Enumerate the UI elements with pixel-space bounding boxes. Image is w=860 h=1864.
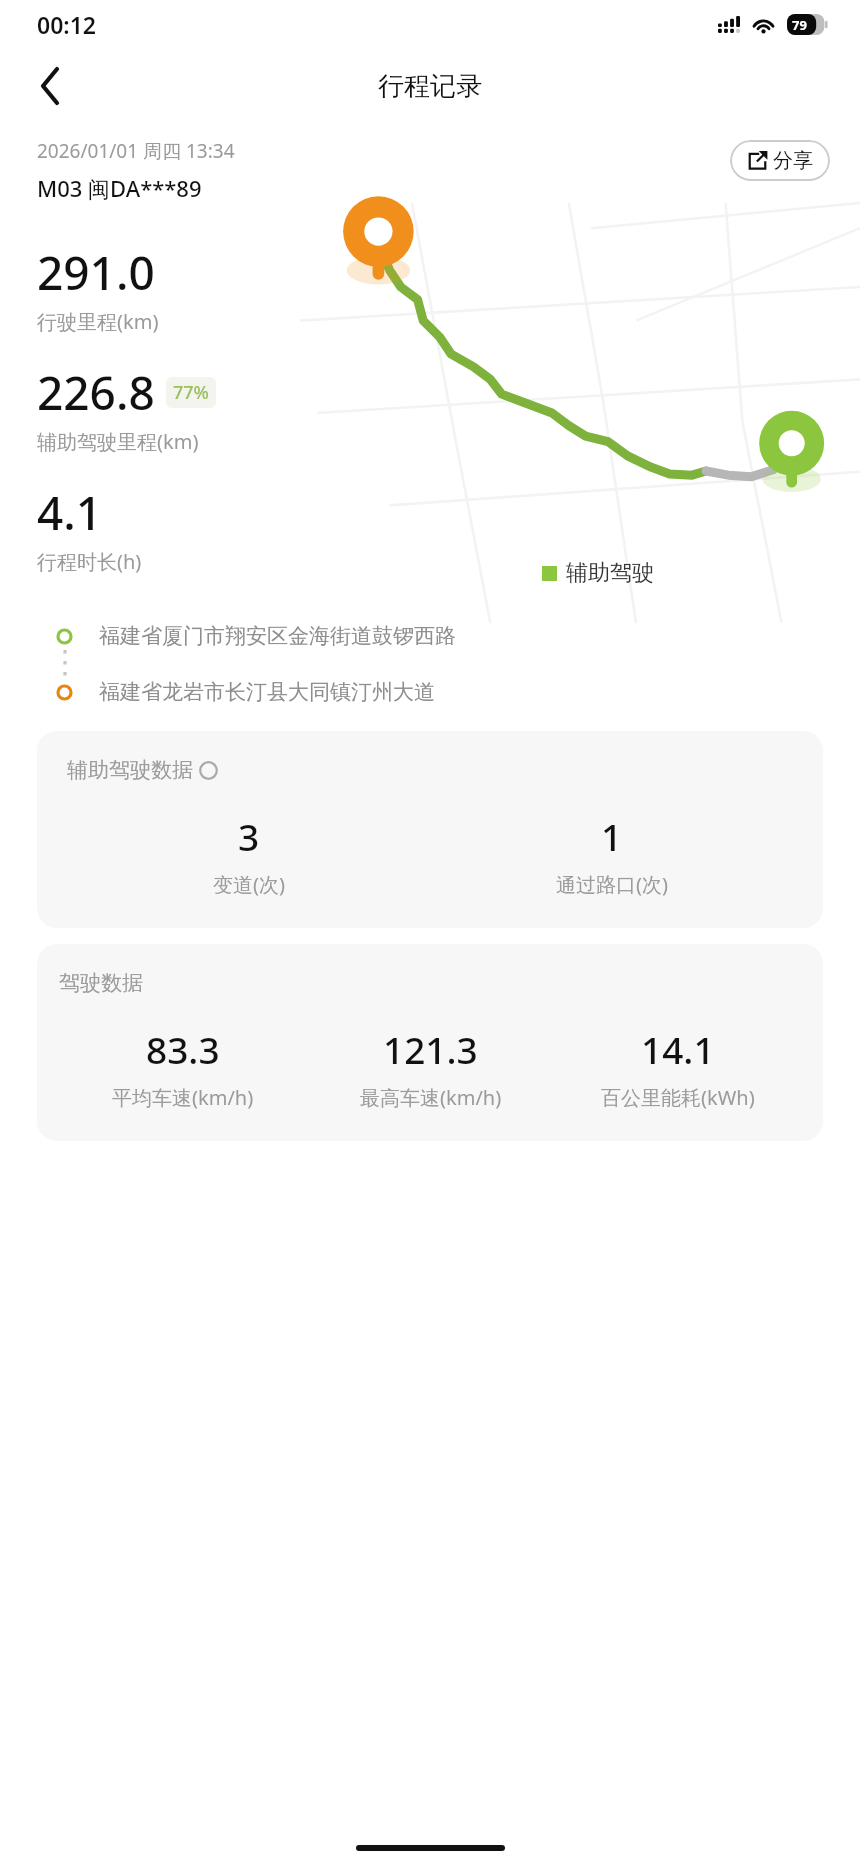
staticText: 00:12 bbox=[37, 9, 96, 40]
staticText: 辅助驾驶 bbox=[566, 559, 654, 587]
staticText: 平均车速(km/h) bbox=[112, 1084, 254, 1111]
staticText: 变道(次) bbox=[213, 871, 285, 898]
button[interactable]: 分享 bbox=[730, 140, 830, 181]
staticText: M03 闽DA***89 bbox=[37, 173, 202, 203]
staticText: 驾驶数据 bbox=[59, 970, 143, 996]
staticText: 226.8 bbox=[37, 361, 155, 424]
staticText: 1 bbox=[601, 811, 623, 861]
staticText: 辅助驾驶数据 bbox=[67, 757, 193, 783]
staticText: 14.1 bbox=[641, 1024, 715, 1074]
staticText: 行程记录 bbox=[378, 70, 482, 103]
staticText: 最高车速(km/h) bbox=[360, 1084, 502, 1111]
staticText: 79 bbox=[792, 16, 807, 34]
staticText: 4.1 bbox=[37, 481, 103, 544]
staticText: 分享 bbox=[773, 148, 813, 173]
staticText: 83.3 bbox=[146, 1024, 220, 1074]
staticText: 百公里能耗(kWh) bbox=[601, 1084, 755, 1111]
staticText: 福建省厦门市翔安区金海街道鼓锣西路 bbox=[99, 623, 456, 649]
staticText: 行驶里程(km) bbox=[37, 308, 159, 335]
staticText: 行程时长(h) bbox=[37, 548, 142, 575]
staticText: 291.0 bbox=[37, 241, 155, 304]
button[interactable]: 辅助驾驶数据 bbox=[37, 731, 823, 928]
staticText: 77% bbox=[173, 380, 209, 405]
staticText: 辅助驾驶里程(km) bbox=[37, 428, 199, 455]
staticText: 福建省龙岩市长汀县大同镇汀州大道 bbox=[99, 679, 435, 705]
button[interactable]: 返回 bbox=[24, 59, 78, 113]
staticText: 通过路口(次) bbox=[556, 871, 668, 898]
button[interactable]: 驾驶数据 bbox=[37, 944, 823, 1141]
staticText: 3 bbox=[238, 811, 260, 861]
staticText: 2026/01/01 周四 13:34 bbox=[37, 138, 235, 164]
staticText: 121.3 bbox=[383, 1024, 478, 1074]
